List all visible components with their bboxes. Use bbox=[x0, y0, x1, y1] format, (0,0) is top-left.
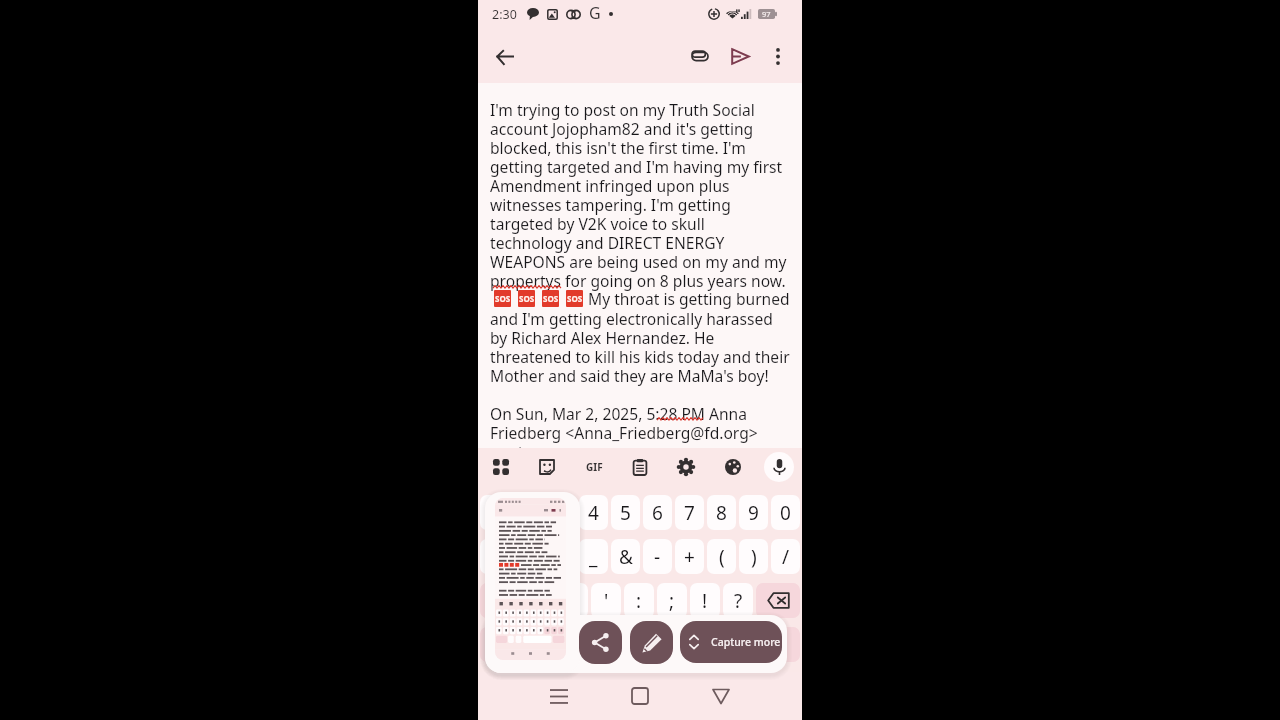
staticText: 3 bbox=[556, 500, 567, 526]
button[interactable]: =\< bbox=[480, 583, 523, 618]
staticText: : bbox=[636, 588, 642, 614]
staticText: _ bbox=[589, 544, 598, 570]
button[interactable]: 9 bbox=[739, 495, 768, 530]
staticText: 7 bbox=[684, 500, 695, 526]
staticText: My throat is getting burned bbox=[588, 288, 790, 309]
button[interactable]: GIF bbox=[579, 452, 609, 482]
button[interactable]: 8 bbox=[707, 495, 736, 530]
staticText: G bbox=[589, 2, 601, 24]
button[interactable]: Back bbox=[680, 672, 761, 720]
button[interactable]: Home bbox=[599, 672, 680, 720]
staticText: * bbox=[535, 588, 546, 614]
button[interactable]: More options bbox=[760, 38, 796, 74]
button[interactable]: * bbox=[526, 583, 555, 618]
staticText: SOS bbox=[495, 293, 511, 304]
button[interactable]: 6 bbox=[643, 495, 672, 530]
button[interactable]: _ bbox=[579, 539, 608, 574]
staticText: ' bbox=[604, 588, 609, 614]
button[interactable]: Attach file bbox=[680, 36, 720, 76]
button[interactable]: Send bbox=[720, 36, 760, 76]
staticText: @ bbox=[486, 544, 504, 570]
button[interactable]: @ bbox=[480, 539, 510, 574]
button[interactable]: 5 bbox=[611, 495, 640, 530]
staticText: I'm trying to post on my Truth Social ac… bbox=[490, 99, 790, 462]
button[interactable]: & bbox=[611, 539, 640, 574]
button[interactable]: ; bbox=[657, 583, 687, 618]
staticText: Capture more bbox=[711, 635, 781, 649]
button[interactable]: ( bbox=[707, 539, 736, 574]
button[interactable]: Stickers bbox=[532, 452, 562, 482]
staticText: 4 bbox=[588, 500, 599, 526]
button[interactable]: , bbox=[531, 627, 560, 662]
button[interactable]: Capture more bbox=[680, 621, 782, 663]
staticText: . bbox=[733, 632, 739, 658]
button[interactable]: Settings bbox=[671, 452, 701, 482]
button[interactable]: $ bbox=[546, 539, 576, 574]
staticText: SOS bbox=[519, 293, 535, 304]
button[interactable]: 4 bbox=[579, 495, 608, 530]
staticText: 6 bbox=[652, 500, 663, 526]
button[interactable]: 7 bbox=[675, 495, 704, 530]
button[interactable]: Recent apps bbox=[518, 672, 599, 720]
staticText: SOS bbox=[543, 293, 559, 304]
button[interactable]: ? bbox=[723, 583, 753, 618]
staticText: ; bbox=[669, 588, 675, 614]
staticText: + bbox=[684, 544, 695, 570]
staticText: # bbox=[522, 544, 535, 570]
button[interactable]: / bbox=[771, 539, 800, 574]
button[interactable]: Enter bbox=[753, 627, 800, 662]
staticText: ? bbox=[734, 588, 743, 614]
button[interactable]: 😊 bbox=[563, 627, 592, 662]
staticText: GIF bbox=[586, 460, 603, 474]
button[interactable]: Edit bbox=[630, 621, 673, 664]
button[interactable]: 2 bbox=[513, 495, 543, 530]
staticText: 2 bbox=[523, 500, 534, 526]
staticText: ( bbox=[719, 544, 725, 570]
staticText: / bbox=[782, 544, 790, 570]
staticText: 8 bbox=[716, 500, 727, 526]
staticText: ABC bbox=[493, 637, 515, 652]
button[interactable]: Back bbox=[484, 36, 524, 76]
button[interactable]: 3 bbox=[546, 495, 576, 530]
button[interactable]: Apps bbox=[486, 452, 516, 482]
staticText: SOS bbox=[567, 293, 583, 304]
button[interactable]: Clipboard bbox=[625, 452, 655, 482]
staticText: 5 bbox=[620, 500, 631, 526]
button[interactable]: " bbox=[558, 583, 588, 618]
button[interactable]: Space bbox=[595, 627, 718, 662]
button[interactable]: Voice input bbox=[764, 452, 794, 482]
staticText: 9 bbox=[748, 500, 759, 526]
staticText: 1 bbox=[490, 500, 501, 526]
staticText: 0 bbox=[780, 500, 791, 526]
button[interactable]: Backspace bbox=[756, 583, 800, 618]
staticText: 2:30 bbox=[492, 6, 517, 23]
button[interactable]: ! bbox=[690, 583, 720, 618]
button[interactable]: : bbox=[624, 583, 654, 618]
button[interactable]: . bbox=[721, 627, 750, 662]
button[interactable]: Share bbox=[579, 621, 622, 664]
staticText: , bbox=[543, 632, 549, 658]
staticText: - bbox=[654, 544, 661, 570]
button[interactable]: # bbox=[513, 539, 543, 574]
button[interactable]: ABC bbox=[480, 627, 528, 662]
staticText: ! bbox=[702, 588, 708, 614]
staticText: =\< bbox=[492, 592, 512, 610]
button[interactable]: ) bbox=[739, 539, 768, 574]
staticText: 😊 bbox=[568, 634, 588, 656]
staticText: $ bbox=[556, 544, 567, 570]
button[interactable]: + bbox=[675, 539, 704, 574]
button[interactable]: - bbox=[643, 539, 672, 574]
button[interactable]: Themes bbox=[718, 452, 748, 482]
button[interactable]: ' bbox=[591, 583, 621, 618]
staticText: ) bbox=[751, 544, 757, 570]
staticText: & bbox=[619, 544, 633, 570]
staticText: 97 bbox=[762, 9, 771, 19]
button[interactable]: 1 bbox=[480, 495, 510, 530]
button[interactable]: 0 bbox=[771, 495, 800, 530]
